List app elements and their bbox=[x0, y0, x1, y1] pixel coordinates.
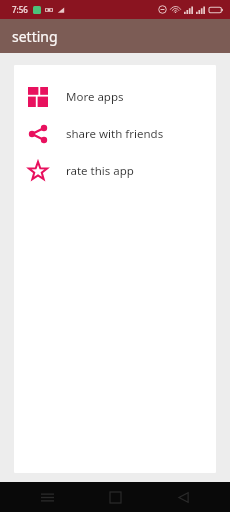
button[interactable]: More apps bbox=[14, 78, 216, 115]
button[interactable]: Back bbox=[166, 482, 200, 512]
button[interactable]: Home bbox=[98, 482, 132, 512]
button[interactable]: share with friends bbox=[14, 115, 216, 152]
staticText: rate this app bbox=[66, 163, 134, 179]
staticText: setting bbox=[12, 27, 58, 46]
staticText: 7:56 bbox=[12, 4, 28, 15]
button[interactable]: rate this app bbox=[14, 152, 216, 189]
staticText: share with friends bbox=[66, 126, 164, 142]
button[interactable]: Recent apps bbox=[30, 482, 64, 512]
staticText: More apps bbox=[66, 89, 124, 105]
